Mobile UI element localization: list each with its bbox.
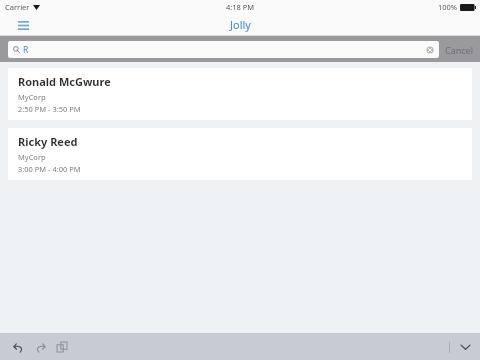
staticText: R	[23, 44, 29, 56]
button[interactable]: Ricky Reed	[8, 128, 472, 180]
staticText: 4:18 PM	[226, 2, 255, 12]
button[interactable]: Paste	[51, 336, 73, 358]
button[interactable]: Redo	[29, 336, 51, 358]
staticText: 100%	[438, 2, 458, 12]
staticText: 2:50 PM - 3:50 PM	[18, 104, 81, 114]
staticText: Carrier	[5, 2, 30, 12]
button[interactable]: Menu	[13, 16, 33, 34]
staticText: Ronald McGwure	[18, 74, 111, 89]
staticText: Ricky Reed	[18, 134, 78, 149]
button[interactable]: R	[8, 41, 439, 58]
staticText: Cancel	[445, 44, 474, 56]
staticText: 3:00 PM - 4:00 PM	[18, 164, 81, 174]
button[interactable]: Ronald McGwure	[8, 68, 472, 120]
button[interactable]: Undo	[7, 336, 29, 358]
staticText: MyCorp	[18, 92, 46, 102]
staticText: Jolly	[230, 17, 251, 32]
button[interactable]: Cancel	[439, 44, 480, 56]
button[interactable]: Clear text	[426, 46, 434, 54]
button[interactable]: Hide keyboard	[456, 338, 474, 356]
staticText: MyCorp	[18, 152, 46, 162]
